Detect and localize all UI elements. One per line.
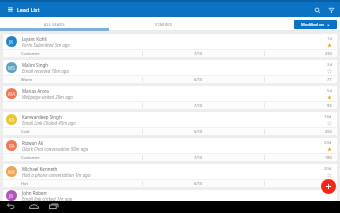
staticText: JK bbox=[9, 39, 14, 45]
button[interactable]: MS bbox=[3, 60, 337, 83]
staticText: 2d bbox=[327, 62, 332, 68]
staticText: 7/10 bbox=[194, 103, 203, 108]
staticText: 20d bbox=[324, 166, 332, 172]
staticText: MA bbox=[8, 91, 16, 97]
button[interactable]: Search bbox=[310, 3, 324, 17]
button[interactable]: JR bbox=[3, 190, 337, 201]
button[interactable]: KS bbox=[3, 112, 337, 135]
staticText: 7/10 bbox=[194, 155, 203, 160]
staticText: Kanwardeep Singh bbox=[22, 114, 62, 120]
staticText: John Robert bbox=[22, 190, 47, 196]
button[interactable]: Filter bbox=[324, 3, 338, 17]
staticText: Manas Arora bbox=[22, 88, 49, 94]
staticText: Olark Chat conversation 50m ago bbox=[22, 146, 89, 152]
staticText: 93 bbox=[327, 103, 332, 108]
staticText: 6/10 bbox=[194, 129, 203, 134]
button[interactable]: Recents bbox=[47, 201, 60, 213]
staticText: KS bbox=[9, 117, 15, 123]
staticText: Customer bbox=[21, 51, 40, 56]
staticText: Email Link Clicked 45m ago bbox=[22, 120, 76, 126]
staticText: Malini Singh bbox=[22, 62, 49, 68]
staticText: Email received 10m ago bbox=[22, 68, 69, 74]
staticText: Warm bbox=[21, 77, 33, 82]
staticText: MS bbox=[8, 65, 15, 71]
staticText: 77 bbox=[327, 77, 332, 82]
staticText: 6/10 bbox=[194, 77, 203, 82]
staticText: Modified on bbox=[301, 22, 325, 28]
staticText: 16d bbox=[324, 114, 332, 120]
button[interactable]: JK bbox=[3, 34, 337, 57]
staticText: STARRED bbox=[155, 22, 173, 27]
staticText: Customer bbox=[21, 155, 40, 160]
staticText: Lead List bbox=[17, 6, 40, 13]
button[interactable]: Modified on bbox=[294, 20, 337, 29]
staticText: ALL LEADS bbox=[44, 22, 65, 27]
button[interactable]: RA bbox=[3, 138, 337, 161]
staticText: 5d bbox=[327, 88, 332, 94]
button[interactable]: MA bbox=[3, 86, 337, 109]
staticText: Webpage visited 20m ago bbox=[22, 94, 73, 100]
staticText: Hot bbox=[21, 181, 28, 186]
staticText: Form Submitted 5m ago bbox=[22, 42, 70, 48]
button[interactable]: MK bbox=[3, 164, 337, 187]
staticText: Cold bbox=[21, 129, 30, 134]
staticText: 250 bbox=[325, 129, 332, 134]
button[interactable]: Menu bbox=[5, 4, 15, 14]
staticText: 20d bbox=[324, 140, 332, 146]
staticText: Email link clicked 1hr ago bbox=[22, 196, 73, 201]
staticText: 7/10 bbox=[194, 51, 203, 56]
staticText: Had a phone conversation 1hr ago bbox=[22, 172, 91, 178]
staticText: 180 bbox=[325, 155, 332, 160]
staticText: 6/10 bbox=[194, 181, 203, 186]
button[interactable]: Back bbox=[4, 201, 17, 213]
staticText: Rizwan Ali bbox=[22, 140, 44, 146]
staticText: RA bbox=[9, 143, 15, 149]
button[interactable]: Add lead bbox=[321, 179, 336, 194]
staticText: Jayant Kohli bbox=[22, 36, 47, 42]
staticText: 1d bbox=[327, 36, 332, 42]
button[interactable]: ALL LEADS bbox=[0, 17, 109, 31]
staticText: JR bbox=[9, 193, 14, 199]
staticText: MK bbox=[8, 169, 16, 175]
button[interactable]: STARRED bbox=[109, 17, 218, 31]
staticText: 230 bbox=[325, 51, 332, 56]
button[interactable]: Home bbox=[27, 201, 40, 213]
staticText: Michael Kenneth bbox=[22, 166, 58, 172]
